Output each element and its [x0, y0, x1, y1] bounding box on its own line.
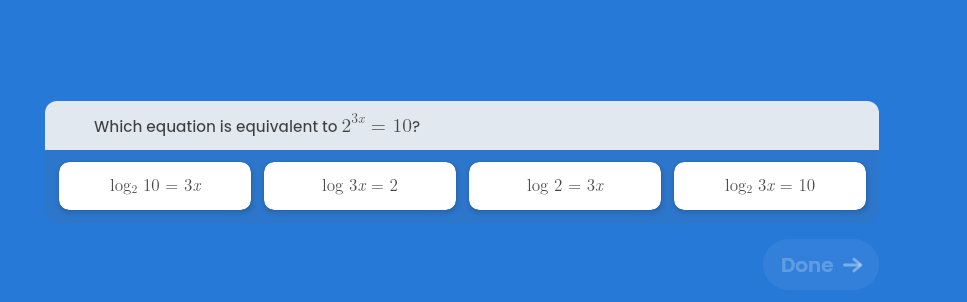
button[interactable]: log2 10 = 3x	[59, 162, 251, 210]
staticText: Which equation is equivalent to 23x = 10…	[94, 108, 421, 138]
button[interactable]: Done	[763, 239, 879, 290]
button[interactable]: log2 3x = 10	[674, 162, 866, 210]
staticText: log2 10 = 3x	[110, 172, 201, 196]
staticText: log 3x = 2	[322, 172, 398, 196]
staticText: log 2 = 3x	[527, 172, 603, 196]
other: Next	[844, 256, 862, 274]
staticText: log2 3x = 10	[725, 172, 816, 196]
staticText: Done	[781, 251, 834, 279]
button[interactable]: log 3x = 2	[264, 162, 456, 210]
button[interactable]: log 2 = 3x	[469, 162, 661, 210]
